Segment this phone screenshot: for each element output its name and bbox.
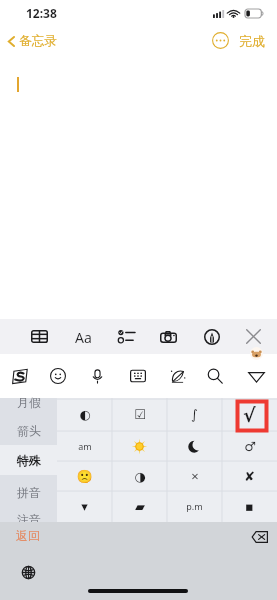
button[interactable]: am xyxy=(57,431,112,461)
button[interactable]: 月假 xyxy=(0,387,57,417)
button[interactable]: Switch keyboard xyxy=(21,565,36,580)
button[interactable]: Close keyboard xyxy=(239,319,268,354)
button[interactable]: More options xyxy=(212,32,229,49)
staticText: 月假 xyxy=(17,395,41,410)
staticText: 注音 xyxy=(17,512,41,527)
button[interactable]: Aa xyxy=(69,319,98,354)
button[interactable]: Hide keyboard xyxy=(242,354,271,398)
button[interactable] xyxy=(167,431,222,461)
button[interactable]: ◐ xyxy=(57,398,112,431)
button[interactable]: p.m xyxy=(167,491,222,521)
staticText: 12:38 xyxy=(26,5,57,21)
staticText: Aa xyxy=(75,328,92,347)
staticText: 备忘录 xyxy=(19,33,57,49)
staticText: 🙁 xyxy=(76,469,93,484)
button[interactable]: 注音 xyxy=(0,504,57,534)
staticText: ✘ xyxy=(244,469,255,484)
button[interactable]: Checklist xyxy=(112,319,141,354)
button[interactable]: 完成 xyxy=(239,33,265,49)
staticText: 拼音 xyxy=(17,485,41,500)
button[interactable]: Camera xyxy=(154,319,183,354)
button[interactable]: √ xyxy=(222,398,277,431)
staticText: √ xyxy=(243,404,256,426)
staticText: ∫ xyxy=(191,407,198,422)
staticText: p.m xyxy=(186,500,203,512)
button[interactable]: ▪ xyxy=(222,491,277,521)
button[interactable]: ☑ xyxy=(112,398,167,431)
button[interactable]: ✘ xyxy=(222,461,277,491)
staticText: ♂ xyxy=(244,439,256,454)
button[interactable]: ◑ xyxy=(112,461,167,491)
staticText: ▾ xyxy=(81,499,88,514)
button[interactable]: Handwriting xyxy=(164,354,192,398)
button[interactable]: 箭头 xyxy=(0,415,57,445)
button[interactable]: 备忘录 xyxy=(7,33,57,49)
staticText: ▪ xyxy=(245,499,254,514)
button[interactable]: 特殊 xyxy=(0,445,57,475)
button[interactable] xyxy=(112,431,167,461)
button[interactable]: 返回 xyxy=(9,526,47,544)
button[interactable]: Search xyxy=(201,354,229,398)
button[interactable]: 拼音 xyxy=(0,477,57,507)
button[interactable]: ▾ xyxy=(57,491,112,521)
button[interactable]: Delete xyxy=(251,531,268,543)
button[interactable]: Keyboard xyxy=(124,354,152,398)
button[interactable]: ▰ xyxy=(112,491,167,521)
staticText: 特殊 xyxy=(17,453,41,468)
staticText: 返回 xyxy=(16,528,40,543)
button[interactable]: Voice input xyxy=(84,354,111,398)
button[interactable]: 🙁 xyxy=(57,461,112,491)
staticText: am xyxy=(78,440,92,452)
staticText: × xyxy=(191,467,199,485)
staticText: ◐ xyxy=(79,407,91,422)
button[interactable]: ♂ xyxy=(222,431,277,461)
staticText: 箭头 xyxy=(17,423,41,438)
button[interactable]: Markup xyxy=(198,319,226,354)
button[interactable]: Sogou keyboard xyxy=(6,354,34,398)
staticText: ▰ xyxy=(135,499,145,514)
button[interactable]: Emoji xyxy=(44,354,72,398)
staticText: ◑ xyxy=(134,469,146,484)
button[interactable]: ∫ xyxy=(167,398,222,431)
button[interactable]: Table xyxy=(25,319,54,354)
staticText: ☑ xyxy=(134,407,146,422)
button[interactable]: × xyxy=(167,461,222,491)
